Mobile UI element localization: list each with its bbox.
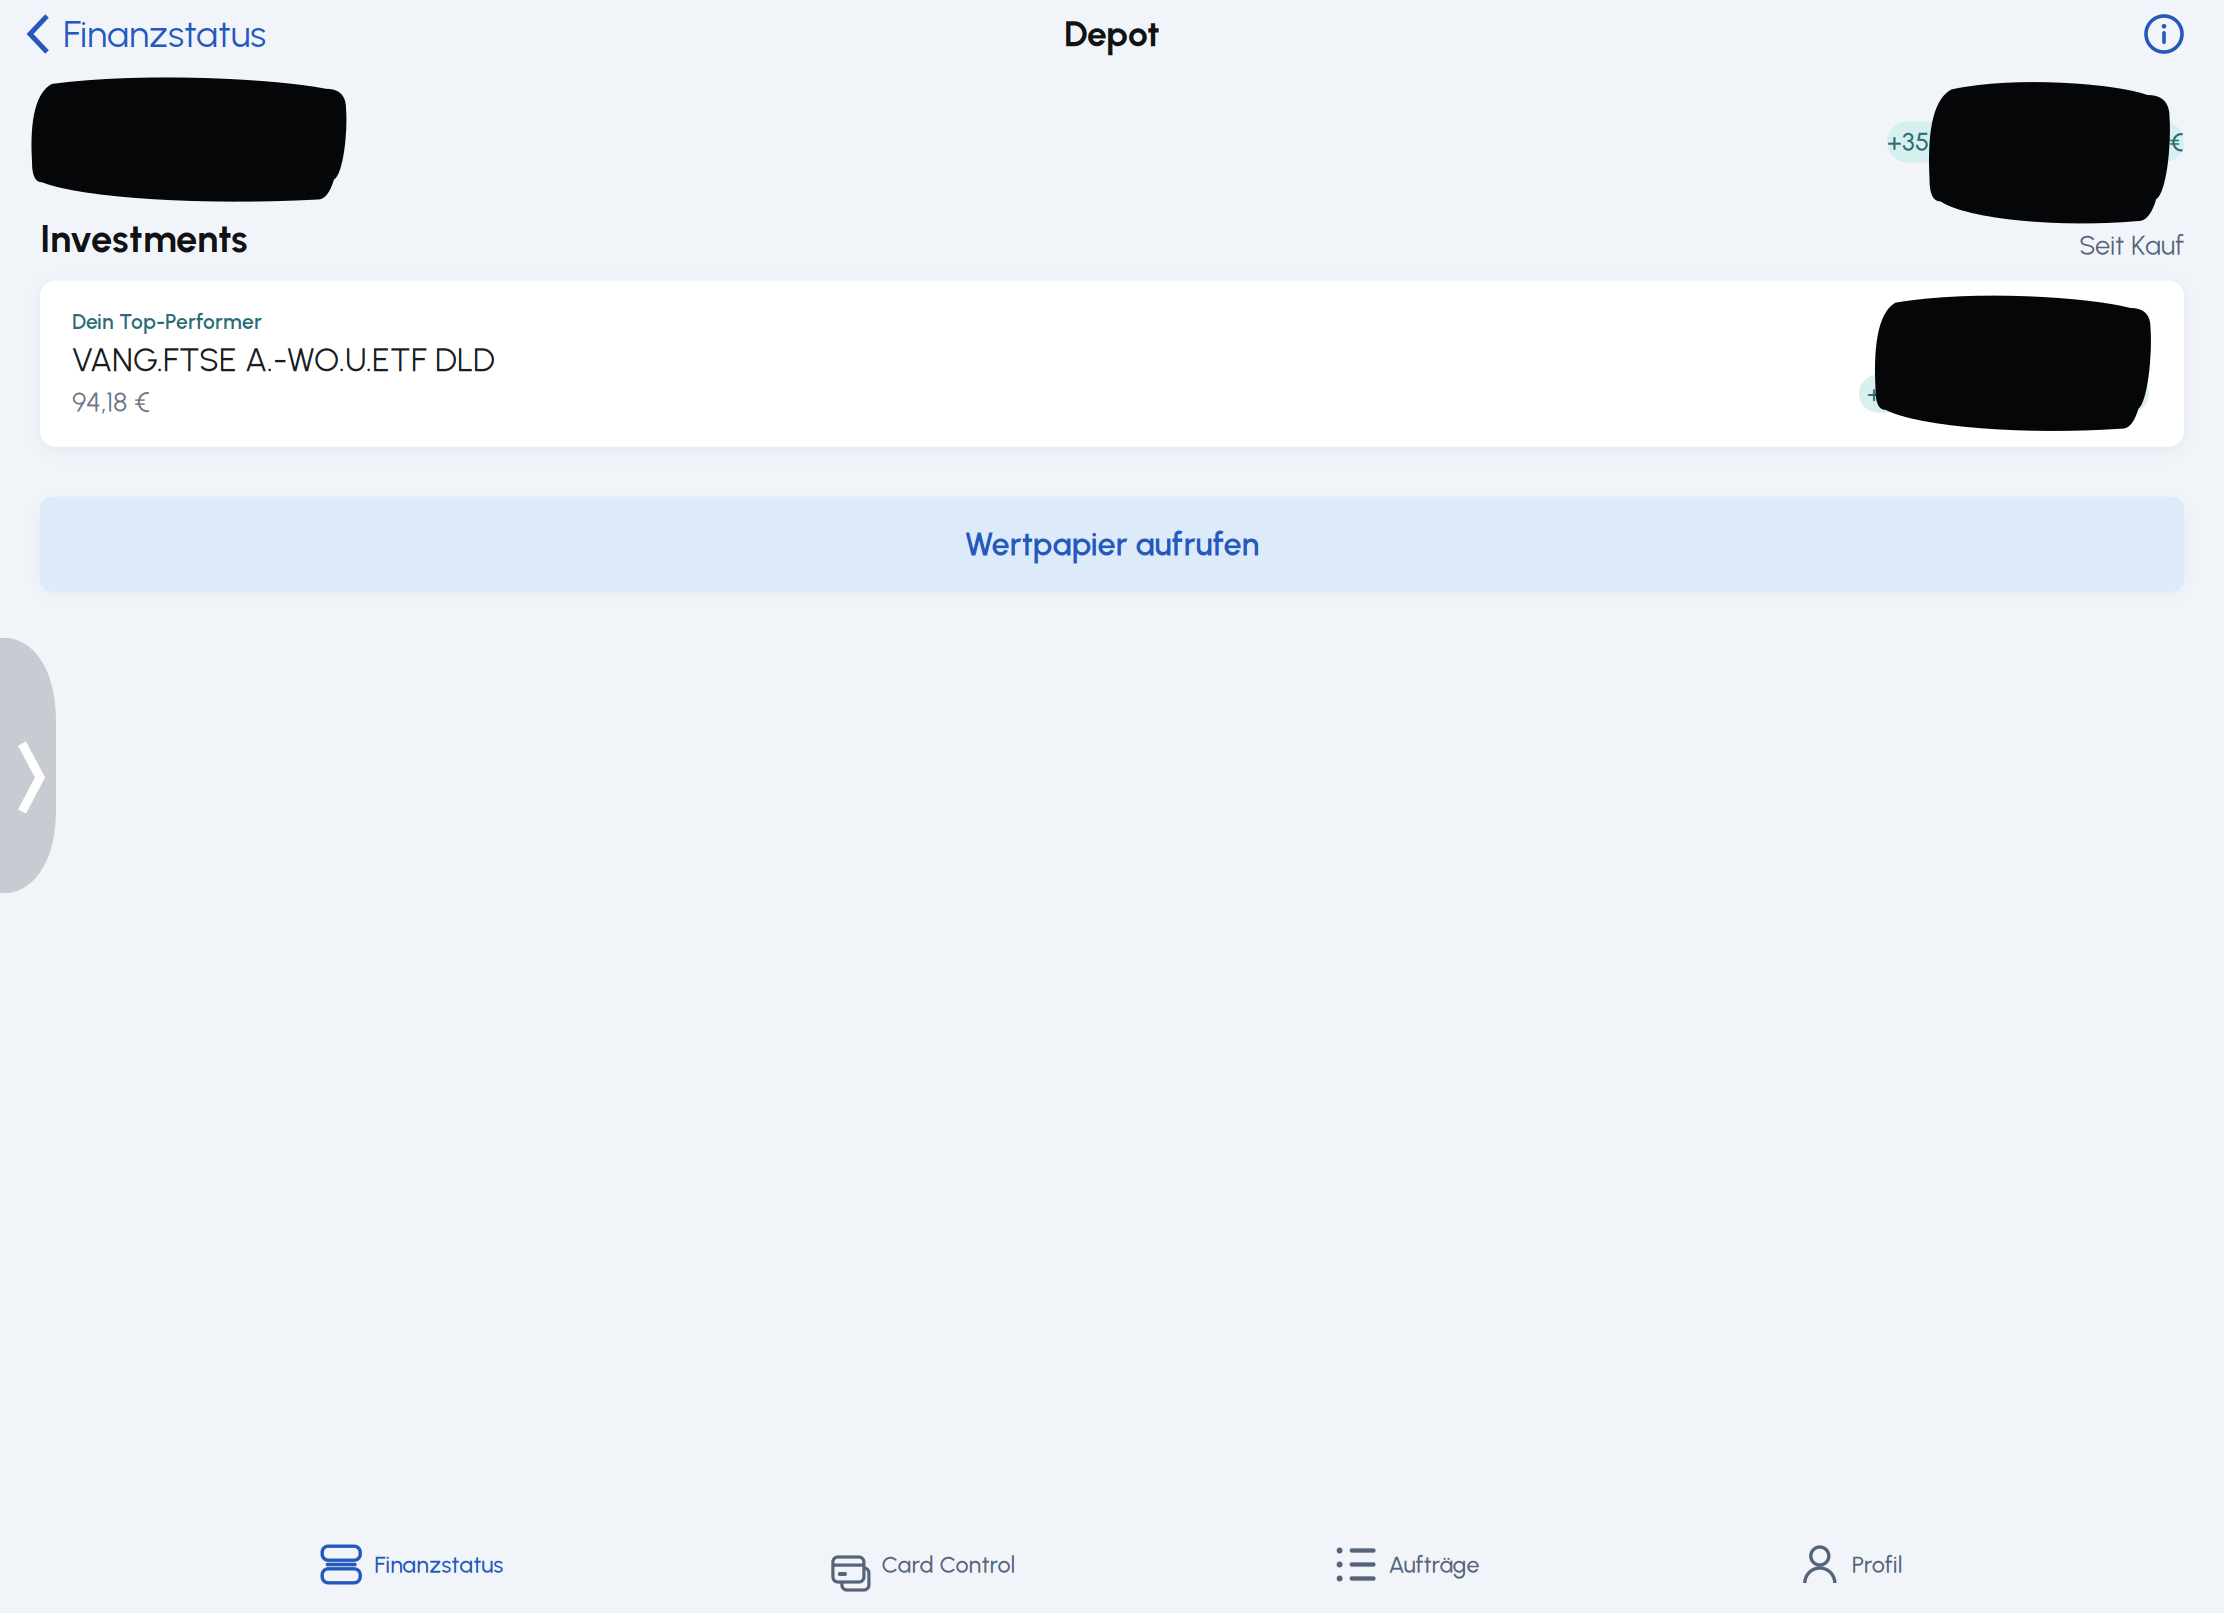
staticText: VANG.FTSE A.-WO.U.ETF DLD [72,340,495,379]
staticText: Dein Top-Performer [72,309,262,334]
staticText: Investments [40,216,248,262]
button[interactable]: Wertpapier aufrufen [40,497,2184,592]
button[interactable]: Finanzstatus [10,4,282,64]
button[interactable]: Finanzstatus [321,1501,503,1611]
staticText: Seit Kauf [2079,229,2184,262]
button[interactable]: Aufträge [1337,1501,1480,1611]
staticText: Depot [1064,13,1160,55]
staticText: Profil [1852,1550,1903,1578]
staticText: Card Control [881,1550,1015,1578]
staticText: 94,18 € [72,385,150,418]
button[interactable]: Info [2136,6,2192,62]
staticText: +35,12 • +7,40 % • 1.284 € [1867,379,2141,408]
button[interactable]: Dein Top-Performer [40,281,2184,447]
button[interactable]: Profil [1801,1501,1903,1611]
button[interactable]: Seitenmenü öffnen [0,638,56,893]
button[interactable]: Card Control [824,1501,1015,1611]
staticText: Finanzstatus [374,1550,503,1578]
staticText: +35,20 • +12,3 % • 981,40 € [1887,127,2184,157]
staticText: Wertpapier aufrufen [964,525,1259,564]
staticText: Finanzstatus [63,12,266,56]
staticText: Aufträge [1389,1550,1480,1578]
